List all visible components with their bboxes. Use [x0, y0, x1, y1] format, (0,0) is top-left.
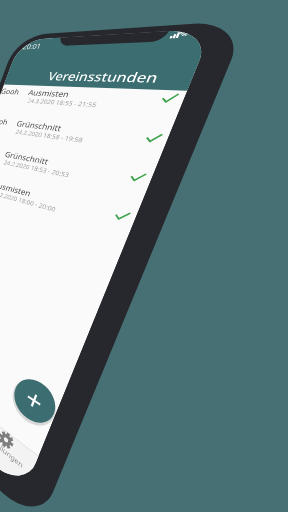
button[interactable]	[0, 0, 288, 512]
